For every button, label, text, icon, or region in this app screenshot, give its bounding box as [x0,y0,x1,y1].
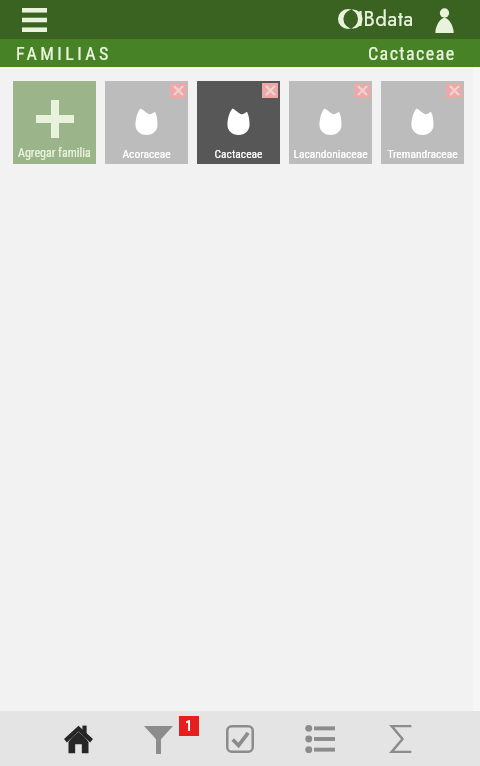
button[interactable]: Cactaceae [197,81,280,164]
staticText: Agregar familia [18,146,91,160]
staticText: FAMILIAS [16,43,112,64]
button[interactable]: Lista [297,716,343,762]
staticText: IBdata [358,5,414,34]
button[interactable]: Eliminar [354,83,370,98]
button[interactable]: Agregar familia [13,81,96,164]
button[interactable]: Tremandraceae [381,81,464,164]
button[interactable]: Cuenta [427,3,462,38]
staticText: Cactaceae [197,147,280,160]
staticText: Lacandoniaceae [289,147,372,160]
button[interactable]: Eliminar [446,83,462,98]
button[interactable]: Eliminar [170,83,186,98]
button[interactable]: Seleccion [217,716,263,762]
button[interactable]: Lacandoniaceae [289,81,372,164]
staticText: Tremandraceae [381,147,464,160]
button[interactable]: Inicio [55,716,101,762]
button[interactable]: Filtro [135,716,181,762]
button[interactable]: Menu [12,0,56,39]
button[interactable]: Acoraceae [105,81,188,164]
staticText: Acoraceae [105,147,188,160]
button[interactable]: Eliminar [262,83,278,98]
staticText: Cactaceae [368,43,456,64]
button[interactable]: Suma [378,716,424,762]
staticText: 1 [185,717,193,735]
